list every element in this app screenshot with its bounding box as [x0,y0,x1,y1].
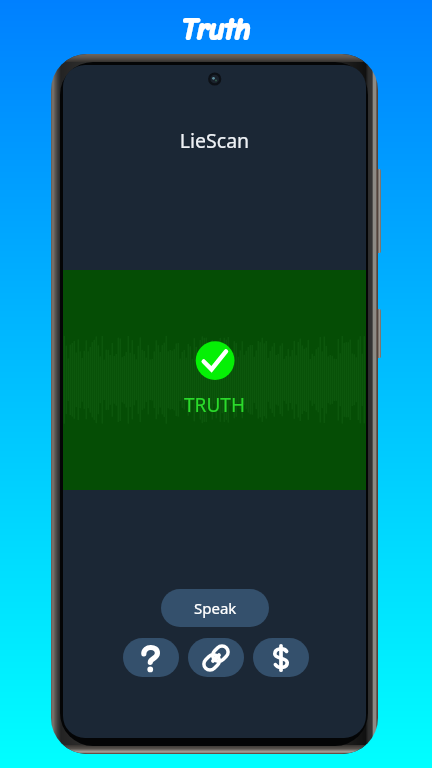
staticText: Truth [0,12,432,768]
button[interactable]: Help [123,638,179,677]
button[interactable]: Share link [188,638,244,677]
staticText: TRUTH [63,392,366,738]
button[interactable]: Upgrade [253,638,309,677]
staticText: Truth [0,12,432,768]
staticText: LieScan [63,127,366,738]
button[interactable]: Speak [161,589,269,627]
staticText: Speak [194,598,237,618]
